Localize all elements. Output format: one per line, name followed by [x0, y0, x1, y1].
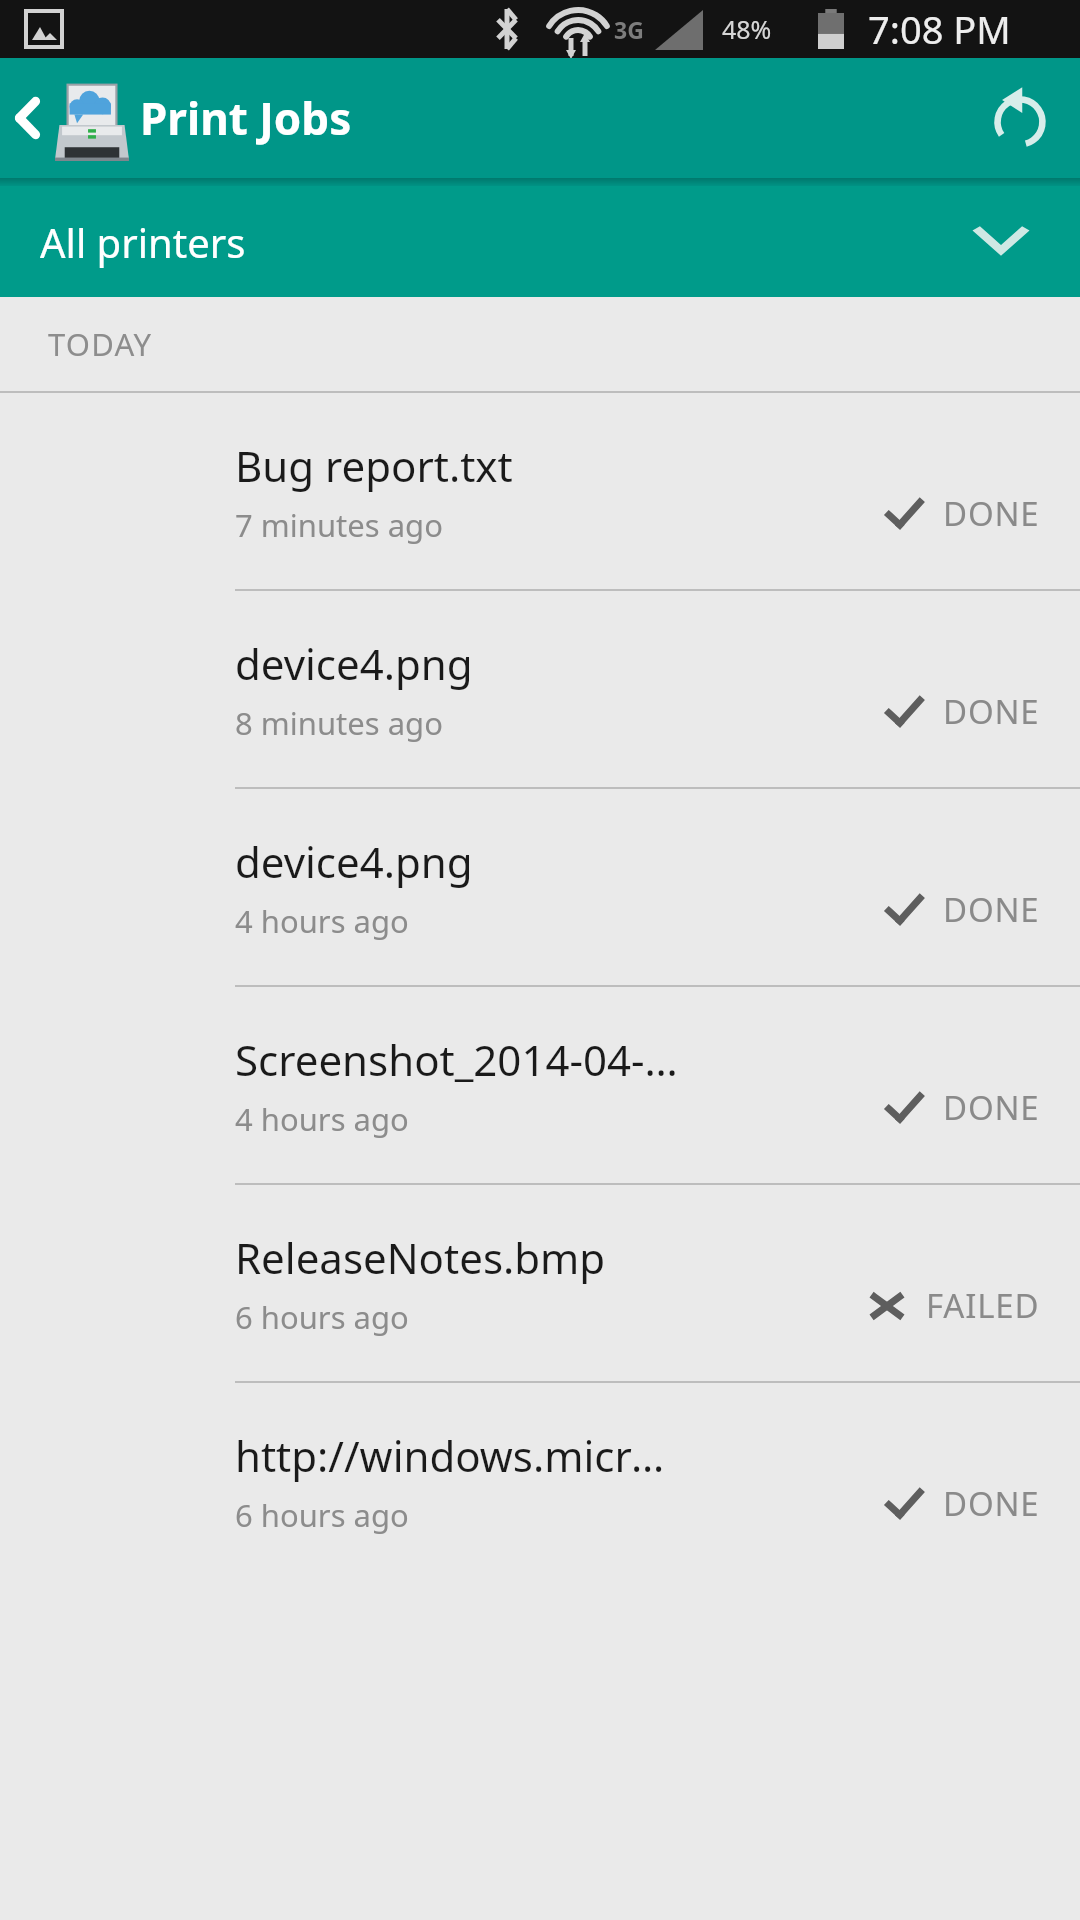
- button[interactable]: device4.png: [0, 591, 1080, 787]
- staticText: 6 hours ago: [235, 1494, 409, 1536]
- staticText: 7 minutes ago: [235, 504, 443, 546]
- button[interactable]: All printers: [0, 186, 1080, 297]
- button[interactable]: Bug report.txt: [0, 393, 1080, 589]
- staticText: ReleaseNotes.bmp: [235, 1229, 606, 1286]
- staticText: FAILED: [926, 1283, 1040, 1328]
- staticText: 6 hours ago: [235, 1296, 409, 1338]
- staticText: http://windows.microsof..: [235, 1427, 680, 1484]
- staticText: Bug report.txt: [235, 437, 513, 494]
- staticText: DONE: [943, 1085, 1040, 1130]
- staticText: device4.png: [235, 635, 473, 692]
- staticText: 3G: [614, 14, 644, 45]
- button[interactable]: Screenshot_2014-04-21-..: [0, 987, 1080, 1183]
- staticText: 8 minutes ago: [235, 702, 443, 744]
- button[interactable]: http://windows.microsof..: [0, 1383, 1080, 1579]
- staticText: DONE: [943, 887, 1040, 932]
- button[interactable]: Back: [0, 58, 58, 178]
- staticText: 48%: [722, 12, 772, 46]
- button[interactable]: Refresh: [960, 58, 1080, 178]
- staticText: DONE: [943, 689, 1040, 734]
- staticText: device4.png: [235, 833, 473, 890]
- staticText: Screenshot_2014-04-21-..: [235, 1031, 680, 1088]
- staticText: 4 hours ago: [235, 1098, 409, 1140]
- staticText: 4 hours ago: [235, 900, 409, 942]
- staticText: 7:08 PM: [868, 3, 1011, 55]
- staticText: TODAY: [48, 323, 153, 365]
- button[interactable]: device4.png: [0, 789, 1080, 985]
- staticText: All printers: [40, 215, 246, 269]
- staticText: DONE: [943, 1481, 1040, 1526]
- staticText: Print Jobs: [140, 88, 352, 148]
- staticText: DONE: [943, 491, 1040, 536]
- button[interactable]: ReleaseNotes.bmp: [0, 1185, 1080, 1381]
